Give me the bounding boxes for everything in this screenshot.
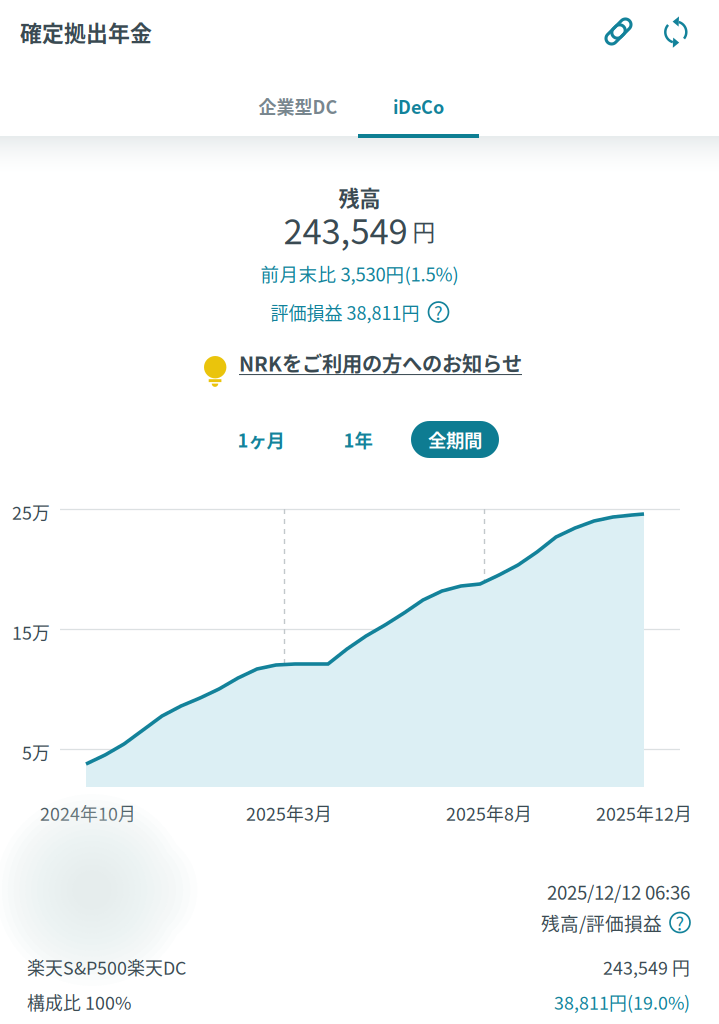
staticText: 243,549	[283, 204, 407, 254]
staticText: 円	[412, 214, 435, 247]
staticText: 2025年12月	[596, 800, 692, 826]
button[interactable]: 全期間	[411, 421, 499, 458]
button[interactable]: NRKをご利用の方へのお知らせ	[239, 348, 522, 377]
staticText: 2025/12/12 06:36	[547, 878, 690, 905]
staticText: 残高	[338, 182, 380, 212]
staticText: 評価損益 38,811円	[270, 299, 419, 325]
button[interactable]: iDeCo	[358, 93, 479, 138]
staticText: 1ヶ月	[237, 426, 284, 453]
staticText: 企業型DC	[258, 93, 337, 119]
staticText: 構成比 100%	[27, 989, 131, 1015]
button[interactable]: 更新	[665, 17, 687, 46]
staticText: 確定拠出年金	[20, 16, 152, 48]
button[interactable]: 残高／評価損益とは	[670, 912, 690, 932]
staticText: 楽天S&P500楽天DC	[27, 954, 186, 980]
staticText: 243,549 円	[603, 954, 690, 980]
staticText: 2025年3月	[246, 800, 332, 826]
staticText: iDeCo	[393, 93, 444, 119]
staticText: 5万	[22, 739, 50, 765]
staticText: NRKをご利用の方へのお知らせ	[239, 348, 522, 377]
staticText: 25万	[12, 499, 50, 525]
staticText: 38,811円(19.0%)	[554, 989, 690, 1015]
staticText: 残高/評価損益	[541, 909, 662, 936]
button[interactable]: 口座連携	[604, 17, 633, 46]
button[interactable]: 評価損益とは	[428, 302, 448, 322]
staticText: 前月末比 3,530円(1.5%)	[260, 260, 458, 287]
staticText: 2024年10月	[40, 800, 136, 826]
button[interactable]: 1ヶ月	[231, 421, 291, 458]
staticText: ?	[675, 909, 684, 936]
staticText: 2025年8月	[446, 800, 532, 826]
button[interactable]: お知らせ	[204, 356, 227, 387]
staticText: 15万	[12, 619, 50, 645]
staticText: 全期間	[428, 426, 482, 453]
staticText: 1年	[343, 426, 372, 453]
staticText: ?	[434, 299, 443, 325]
button[interactable]: 1年	[336, 421, 380, 458]
button[interactable]: 企業型DC	[240, 93, 356, 139]
